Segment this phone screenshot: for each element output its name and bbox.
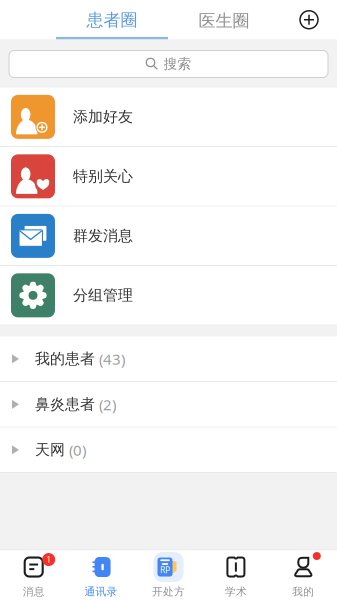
staticText: 医生圈: [198, 10, 249, 31]
staticText: 开处方: [152, 585, 185, 598]
staticText: 群发消息: [73, 226, 133, 245]
staticText: (2): [99, 394, 116, 414]
button[interactable]: 群发消息: [0, 206, 337, 266]
button[interactable]: 患者圈: [56, 0, 168, 39]
button[interactable]: 特别关心: [0, 147, 337, 206]
staticText: 我的患者: [35, 349, 95, 368]
staticText: 鼻炎患者: [35, 395, 95, 414]
button[interactable]: 鼻炎患者: [0, 382, 337, 427]
staticText: 搜索: [163, 55, 191, 72]
button[interactable]: 1: [0, 550, 67, 600]
button[interactable]: 医生圈: [168, 0, 280, 39]
button[interactable]: 搜索: [0, 50, 337, 77]
staticText: 学术: [225, 585, 247, 598]
staticText: 特别关心: [73, 167, 133, 186]
staticText: 添加好友: [73, 107, 133, 126]
button[interactable]: 我的: [270, 550, 337, 600]
staticText: 我的: [292, 585, 314, 598]
staticText: 患者圈: [86, 9, 137, 31]
staticText: (43): [99, 349, 125, 369]
button[interactable]: Add: [294, 5, 324, 35]
staticText: (0): [69, 440, 86, 460]
button[interactable]: 添加好友: [0, 87, 337, 147]
button[interactable]: 分组管理: [0, 266, 337, 325]
staticText: 分组管理: [73, 286, 133, 305]
staticText: 消息: [23, 585, 45, 598]
staticText: 天网: [35, 440, 65, 459]
button[interactable]: 学术: [202, 550, 270, 600]
staticText: RP: [160, 564, 170, 576]
staticText: 通讯录: [85, 585, 118, 598]
staticText: 1: [46, 554, 51, 565]
button[interactable]: 通讯录: [67, 550, 135, 600]
button[interactable]: RP: [135, 550, 202, 600]
button[interactable]: 我的患者: [0, 336, 337, 382]
button[interactable]: 天网: [0, 427, 337, 473]
